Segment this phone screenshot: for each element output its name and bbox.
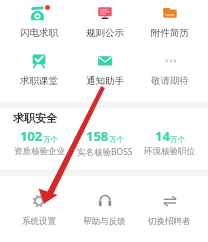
button[interactable]: 敬请期待 (137, 51, 202, 87)
staticText: 通知助手 (86, 75, 124, 87)
staticText: 万个 (109, 135, 124, 144)
staticText: 敬请期待 (151, 75, 189, 87)
staticText: 万个 (170, 135, 185, 144)
staticText: 资质核验企业 (14, 146, 65, 157)
staticText: 闪电求职 (20, 27, 58, 39)
staticText: 环境核验职位 (144, 146, 195, 157)
button[interactable]: 附件简历 (137, 3, 202, 39)
staticText: 系统设置 (22, 216, 56, 227)
staticText: 14 (155, 127, 170, 145)
other: Settings (32, 193, 46, 209)
button[interactable]: 闪电求职 (6, 3, 72, 39)
other: Help and feedback (98, 193, 112, 209)
button[interactable]: Switch role (137, 193, 202, 227)
staticText: 附件简历 (151, 27, 189, 39)
staticText: 102 (20, 127, 43, 145)
staticText: 求职安全 (13, 111, 57, 125)
button[interactable]: 通知助手 (72, 51, 137, 87)
button[interactable]: Help and feedback (72, 193, 137, 227)
staticText: 158 (86, 127, 109, 145)
staticText: 万个 (43, 135, 58, 144)
staticText: 实名核验BOSS (77, 146, 133, 158)
staticText: 帮助与反馈 (83, 216, 126, 227)
button[interactable]: 规则公示 (72, 3, 137, 39)
other: Switch role (163, 193, 177, 209)
staticText: 规则公示 (86, 27, 124, 39)
button[interactable]: 求职课堂 (6, 51, 72, 87)
staticText: 求职课堂 (20, 75, 58, 87)
button[interactable]: Settings (6, 193, 72, 227)
staticText: 切换招聘者 (148, 216, 191, 227)
